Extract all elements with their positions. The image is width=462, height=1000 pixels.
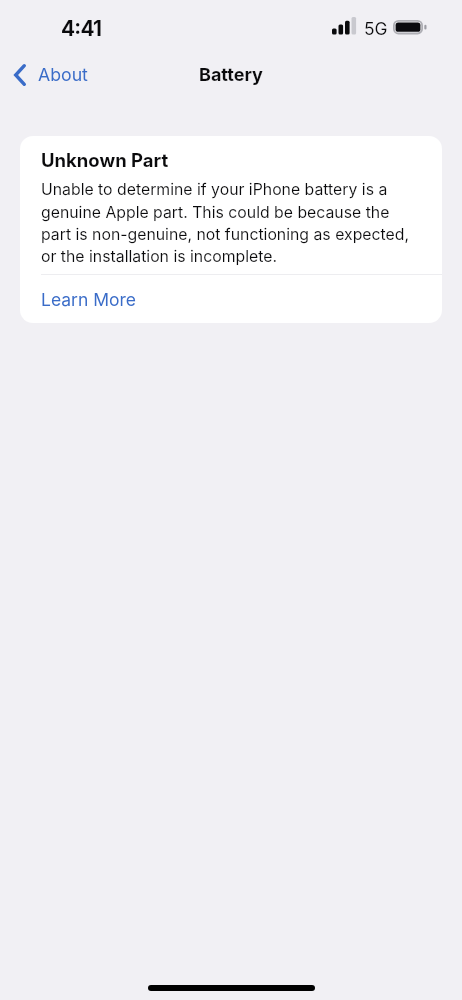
staticText: Learn More	[41, 289, 137, 310]
staticText: Unknown Part	[41, 149, 169, 171]
button[interactable]: Learn More	[20, 275, 442, 323]
staticText: Battery	[199, 64, 263, 86]
staticText: Unable to determine if your iPhone batte…	[41, 180, 415, 266]
staticText: 5G	[364, 18, 388, 39]
button[interactable]: Back to About	[0, 60, 102, 90]
other: Battery full	[393, 20, 431, 36]
staticText: About	[38, 64, 88, 85]
staticText: 4:41	[61, 16, 102, 41]
other: Cellular signal strength	[332, 17, 357, 35]
